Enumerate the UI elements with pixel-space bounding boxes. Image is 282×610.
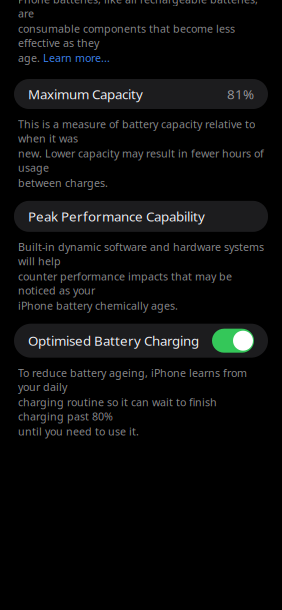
staticText: To reduce battery ageing, iPhone learns … xyxy=(18,366,247,394)
button[interactable]: Maximum Capacity xyxy=(14,79,268,109)
staticText: Peak Performance Capability xyxy=(28,207,205,225)
staticText: consumable components that become less e… xyxy=(18,21,235,50)
staticText: counter performance impacts that may be … xyxy=(18,269,232,297)
staticText: Phone batteries, like all rechargeable b… xyxy=(18,0,258,20)
staticText: iPhone battery chemically ages. xyxy=(18,298,178,313)
staticText: age. xyxy=(18,51,40,65)
staticText: 81% xyxy=(227,85,254,103)
button[interactable]: Optimised Battery Charging xyxy=(14,324,268,358)
staticText: until you need to use it. xyxy=(18,424,139,439)
staticText: new. Lower capacity may result in fewer … xyxy=(18,146,264,175)
button[interactable]: Peak Performance Capability xyxy=(14,201,268,232)
staticText: Built-in dynamic software and hardware s… xyxy=(18,240,264,268)
staticText: charging routine so it can wait to finis… xyxy=(18,395,217,423)
staticText: Maximum Capacity xyxy=(28,85,143,103)
staticText: between charges. xyxy=(18,176,108,190)
staticText: This is a measure of battery capacity re… xyxy=(18,117,255,145)
button[interactable]: Learn more... xyxy=(43,51,110,65)
staticText: Learn more... xyxy=(43,51,110,65)
staticText: Optimised Battery Charging xyxy=(28,332,199,349)
